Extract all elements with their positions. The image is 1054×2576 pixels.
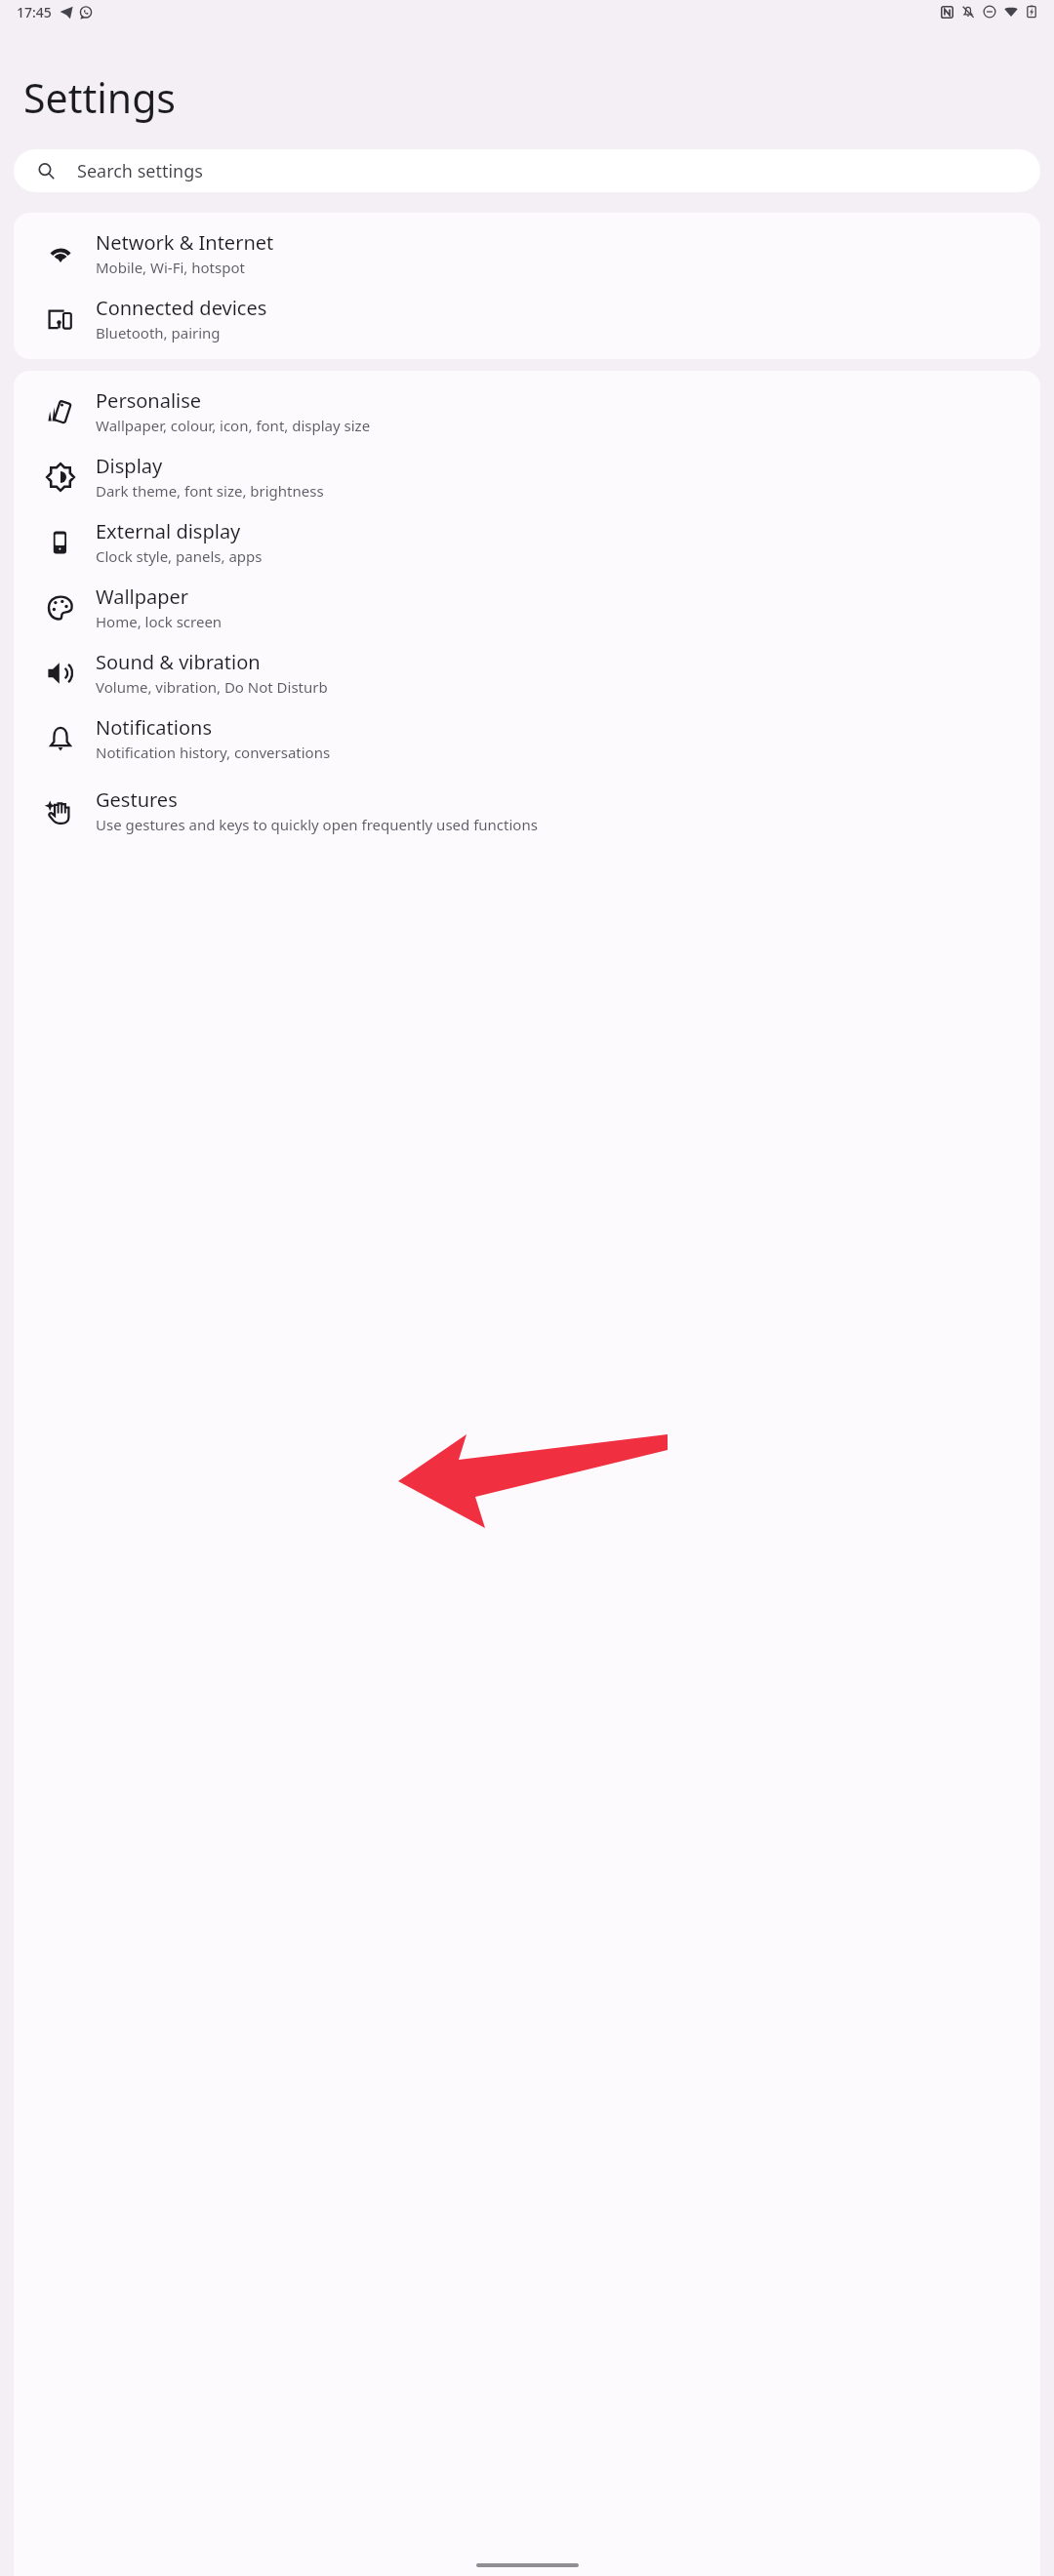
staticText: External display [96,518,241,544]
button[interactable]: Sound & vibration [14,640,1040,705]
staticText: Personalise [96,387,202,414]
staticText: Home, lock screen [96,612,223,631]
staticText: Wallpaper, colour, icon, font, display s… [96,416,371,435]
staticText: Search settings [77,159,203,183]
button[interactable]: Network & Internet [14,221,1040,286]
staticText: Sound & vibration [96,649,261,675]
staticText: Notification history, conversations [96,743,331,762]
staticText: Dark theme, font size, brightness [96,481,324,501]
button[interactable]: Display [14,444,1040,509]
button[interactable]: Personalise [14,379,1040,444]
staticText: Notifications [96,714,212,741]
button[interactable]: Search settings [14,149,1040,192]
staticText: Display [96,453,163,479]
button[interactable]: Gestures [14,771,1040,849]
staticText: Connected devices [96,295,267,321]
staticText: Clock style, panels, apps [96,546,263,566]
staticText: Use gestures and keys to quickly open fr… [96,815,538,834]
button[interactable]: Wallpaper [14,575,1040,640]
button[interactable]: Notifications [14,705,1040,771]
staticText: Wallpaper [96,584,189,610]
staticText: Gestures [96,786,178,813]
staticText: Volume, vibration, Do Not Disturb [96,677,328,697]
button[interactable]: Connected devices [14,286,1040,351]
button[interactable]: External display [14,509,1040,575]
staticText: Bluetooth, pairing [96,323,221,342]
staticText: Network & Internet [96,229,274,256]
staticText: Settings [23,70,177,125]
staticText: 17:45 [17,3,52,21]
staticText: Mobile, Wi-Fi, hotspot [96,258,245,277]
